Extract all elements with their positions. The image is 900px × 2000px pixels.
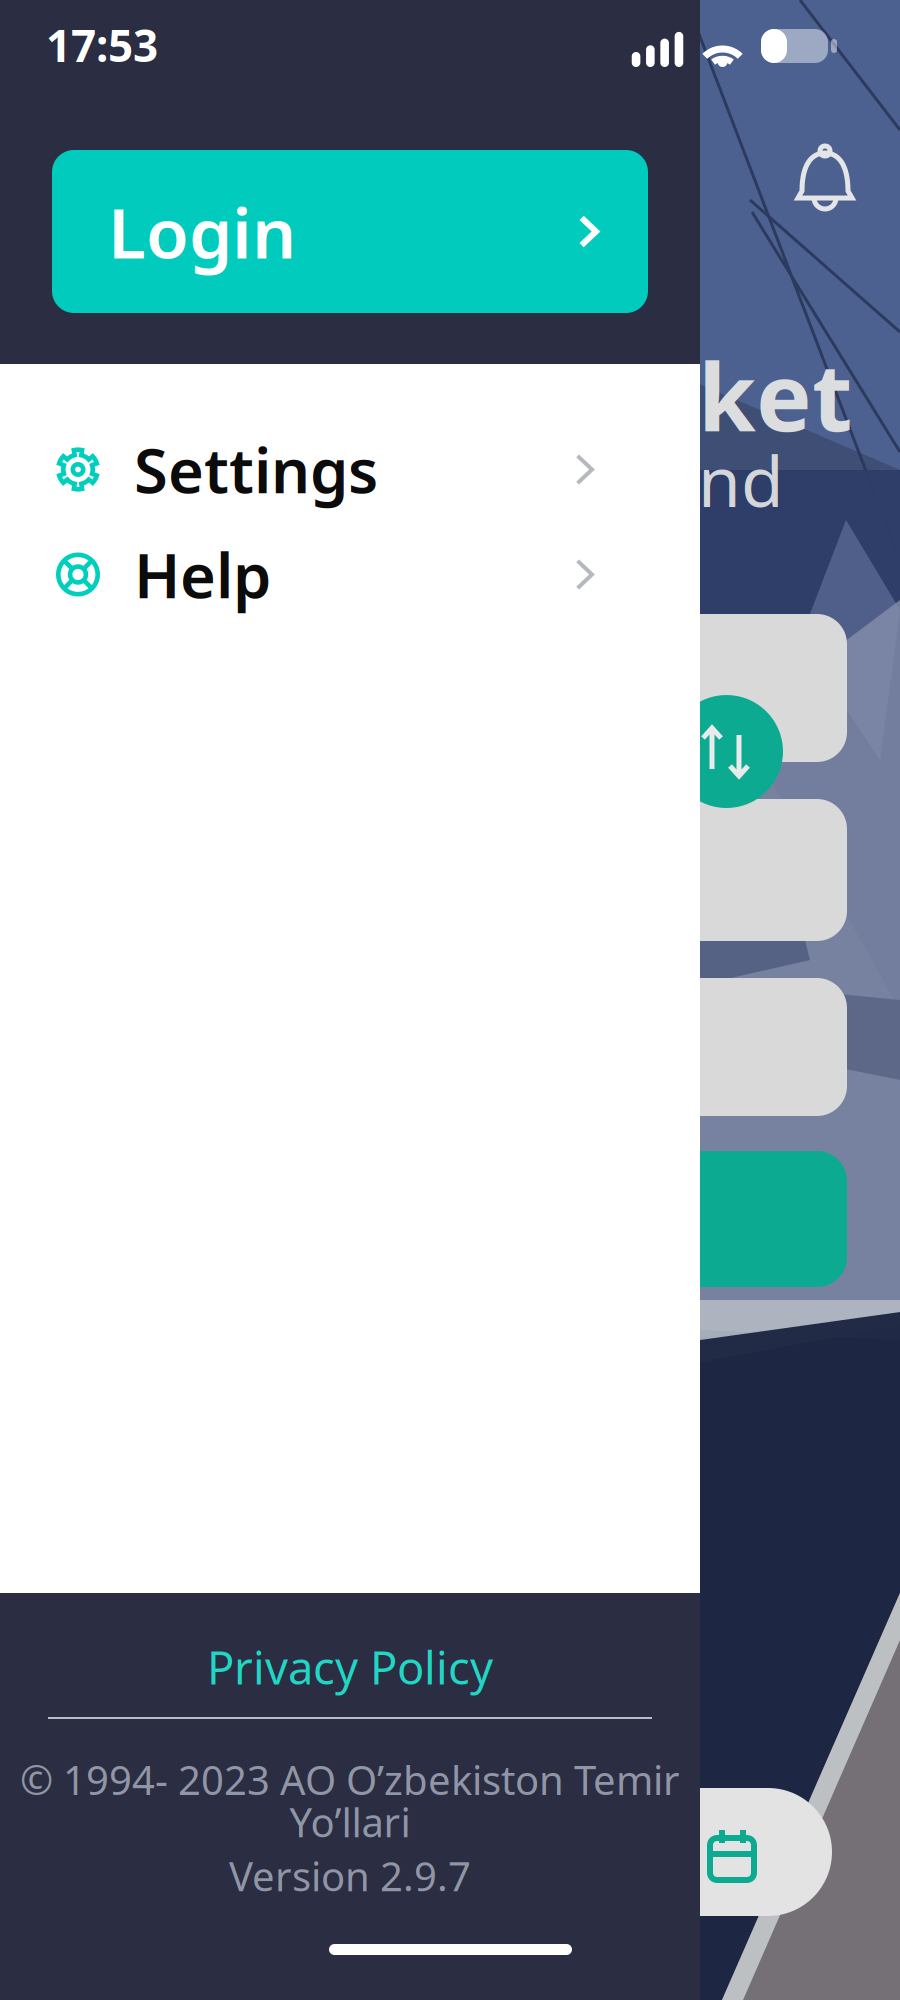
staticText: Privacy Policy	[207, 1637, 493, 1697]
staticText: Yo’llari	[289, 1795, 410, 1848]
staticText: Help	[134, 534, 271, 615]
button[interactable]: Notifications	[796, 144, 854, 214]
staticText: Version 2.9.7	[229, 1849, 471, 1902]
button[interactable]: Privacy Policy	[48, 1635, 652, 1699]
staticText: 17:53	[46, 16, 158, 74]
staticText: Login	[108, 185, 296, 278]
staticText: ket	[698, 333, 853, 457]
button[interactable]: Calendar	[632, 1788, 832, 1916]
staticText: nd	[698, 434, 784, 526]
button[interactable]: Settings	[0, 417, 700, 522]
staticText: © 1994- 2023 AO O’zbekiston Temir	[20, 1753, 680, 1806]
staticText: Settings	[134, 429, 378, 510]
button[interactable]: Login	[52, 150, 648, 313]
button[interactable]: Help	[0, 522, 700, 627]
